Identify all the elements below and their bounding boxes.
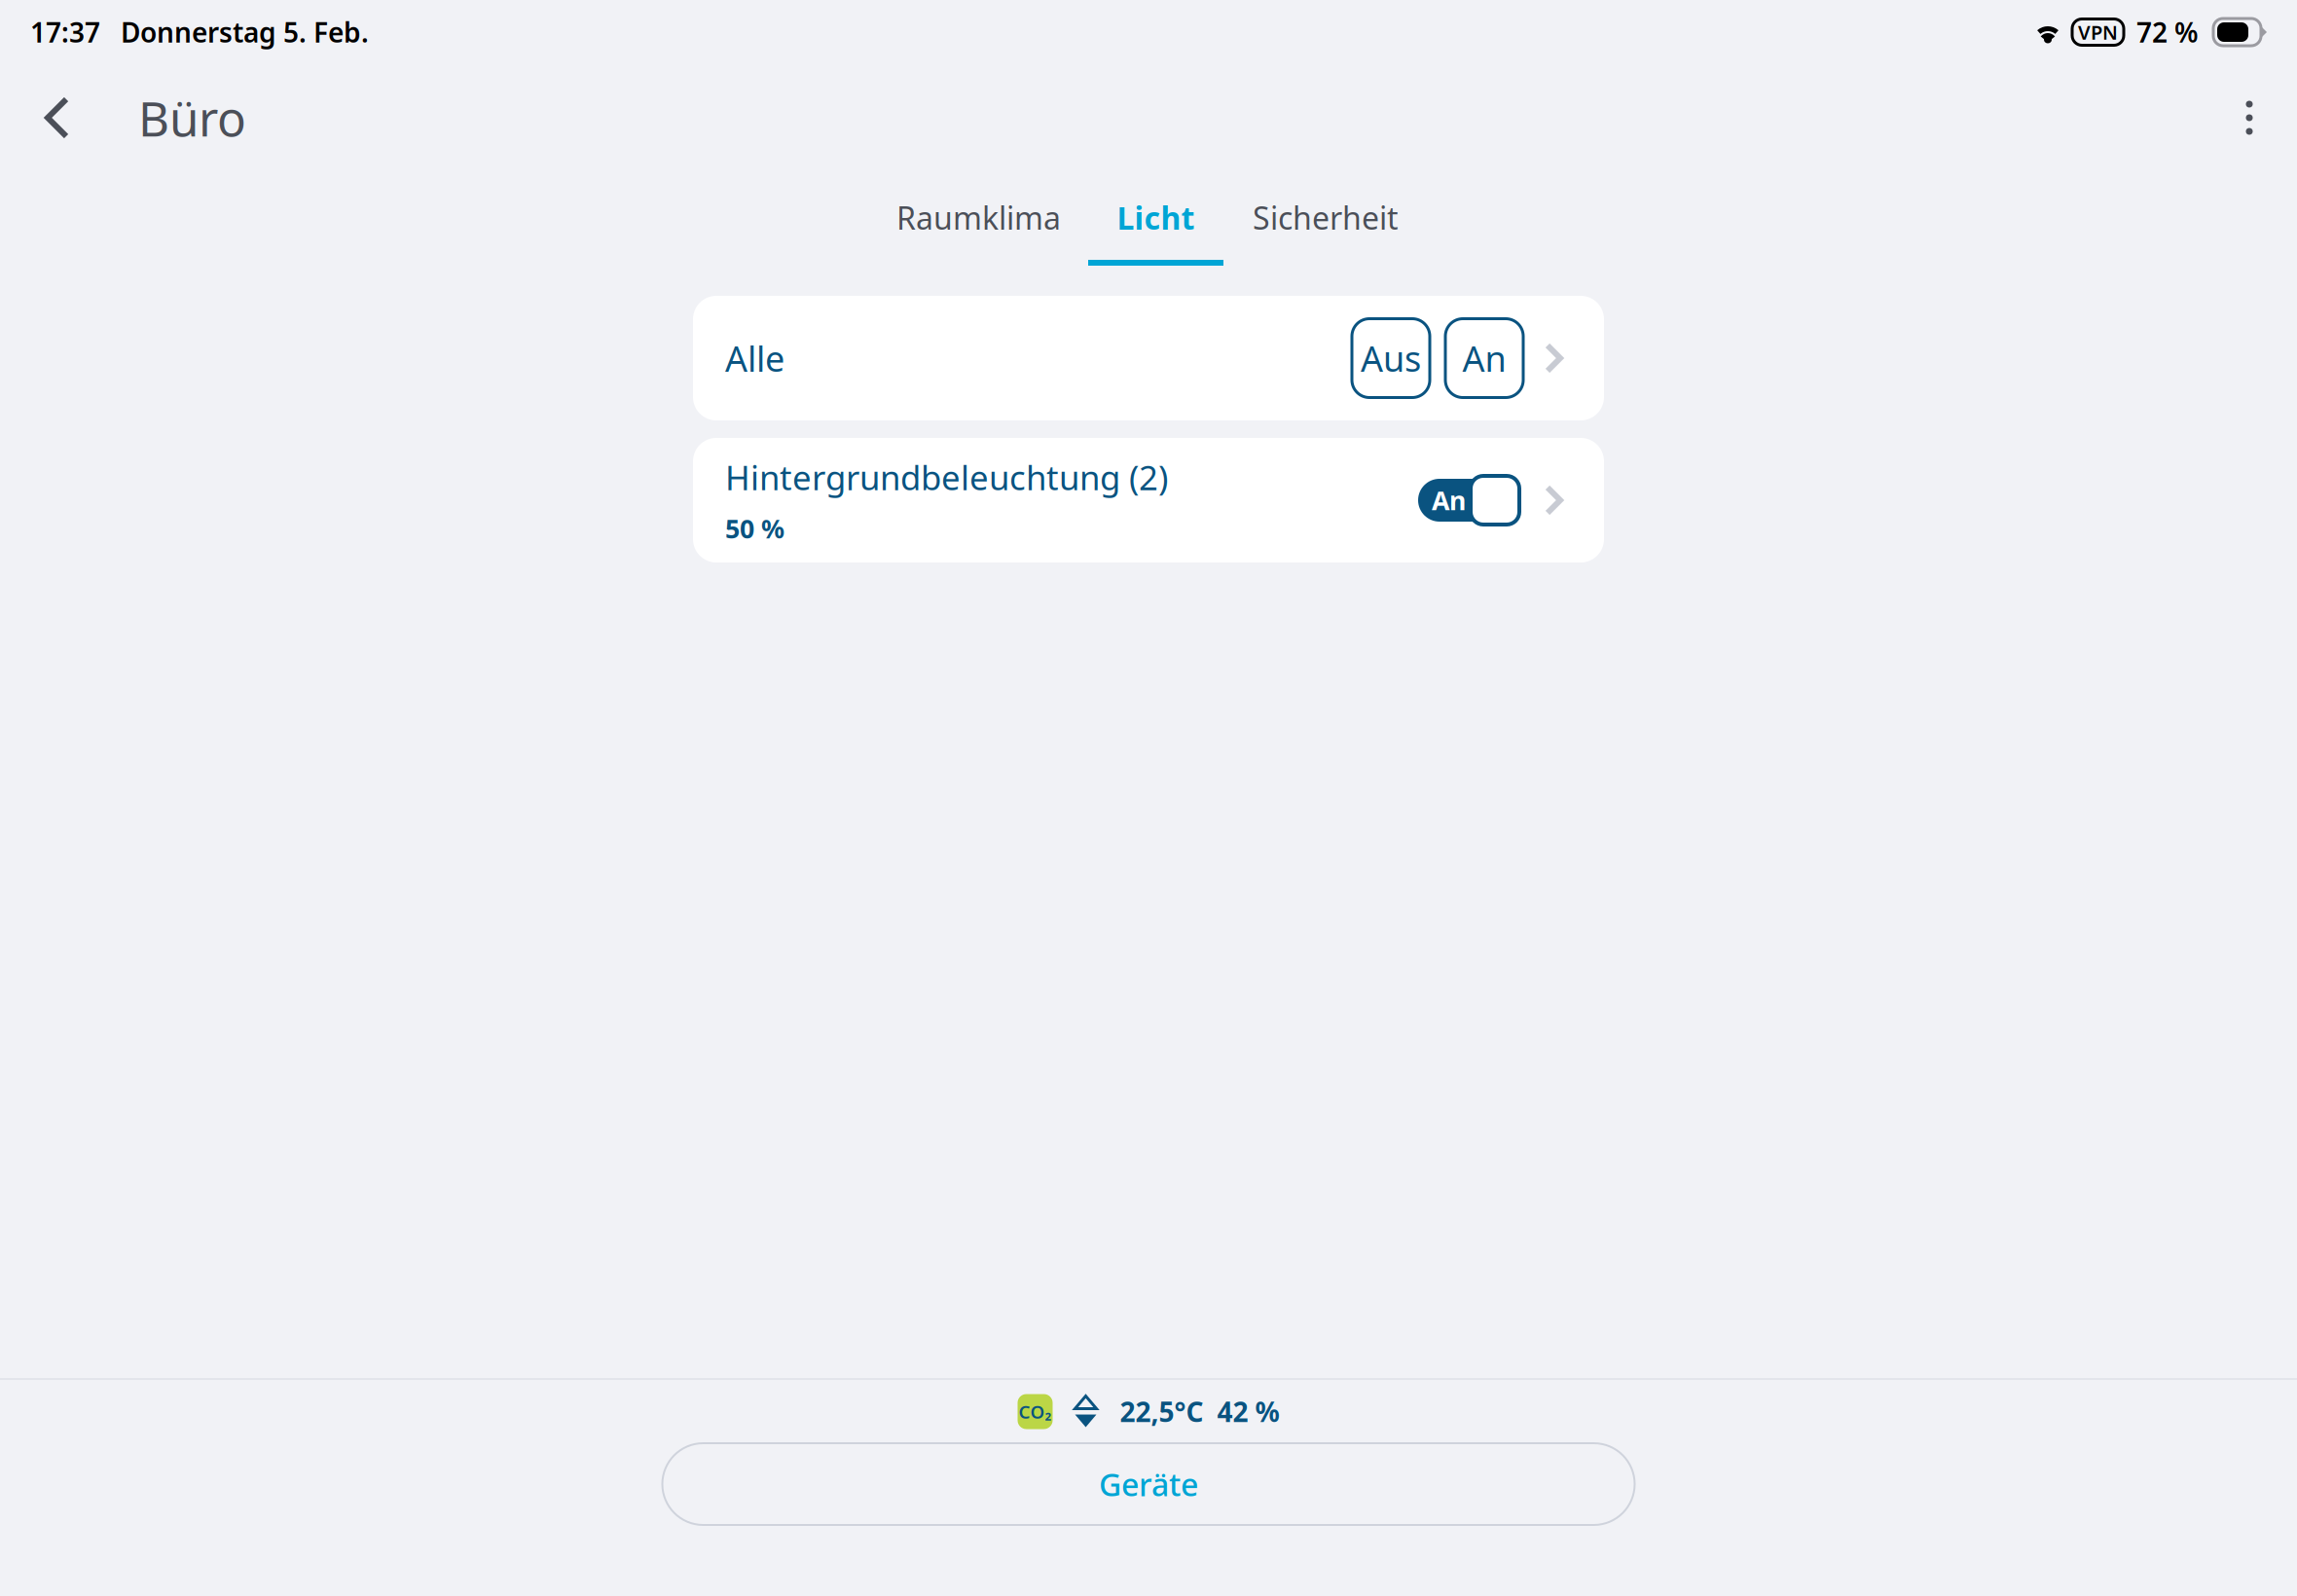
button[interactable]: Hintergrundbeleuchtung an bbox=[1418, 474, 1519, 526]
button[interactable]: Raumklima bbox=[870, 171, 1088, 269]
button[interactable]: Aus bbox=[1352, 319, 1430, 398]
button[interactable]: Weitere Optionen bbox=[2205, 67, 2294, 168]
button[interactable]: Zurück bbox=[12, 67, 101, 168]
staticText: Hintergrundbeleuchtung (2) bbox=[725, 455, 1168, 500]
staticText: 17:37 bbox=[30, 14, 100, 50]
staticText: An bbox=[1432, 483, 1466, 517]
staticText: Licht bbox=[1117, 197, 1195, 238]
staticText: Aus bbox=[1361, 335, 1421, 381]
staticText: Donnerstag 5. Feb. bbox=[121, 14, 369, 50]
button[interactable]: Hintergrundbeleuchtung (2) bbox=[693, 438, 1604, 562]
button[interactable]: Licht bbox=[1088, 171, 1224, 269]
staticText: Büro bbox=[138, 86, 246, 150]
button[interactable]: Alle bbox=[693, 296, 1604, 420]
staticText: Sicherheit bbox=[1253, 197, 1399, 238]
staticText: Geräte bbox=[1099, 1463, 1198, 1505]
staticText: 22,5°C 42 % bbox=[1120, 1393, 1279, 1430]
staticText: 50 % bbox=[725, 511, 784, 546]
staticText: VPN bbox=[2078, 19, 2118, 45]
staticText: 72 % bbox=[2136, 14, 2199, 50]
staticText: CO₂ bbox=[1019, 1400, 1052, 1424]
staticText: An bbox=[1462, 335, 1506, 381]
staticText: Alle bbox=[725, 335, 784, 381]
button[interactable]: An bbox=[1445, 319, 1523, 398]
button[interactable]: Sicherheit bbox=[1224, 171, 1427, 269]
button[interactable]: Geräte bbox=[662, 1443, 1635, 1525]
staticText: Raumklima bbox=[896, 197, 1061, 238]
